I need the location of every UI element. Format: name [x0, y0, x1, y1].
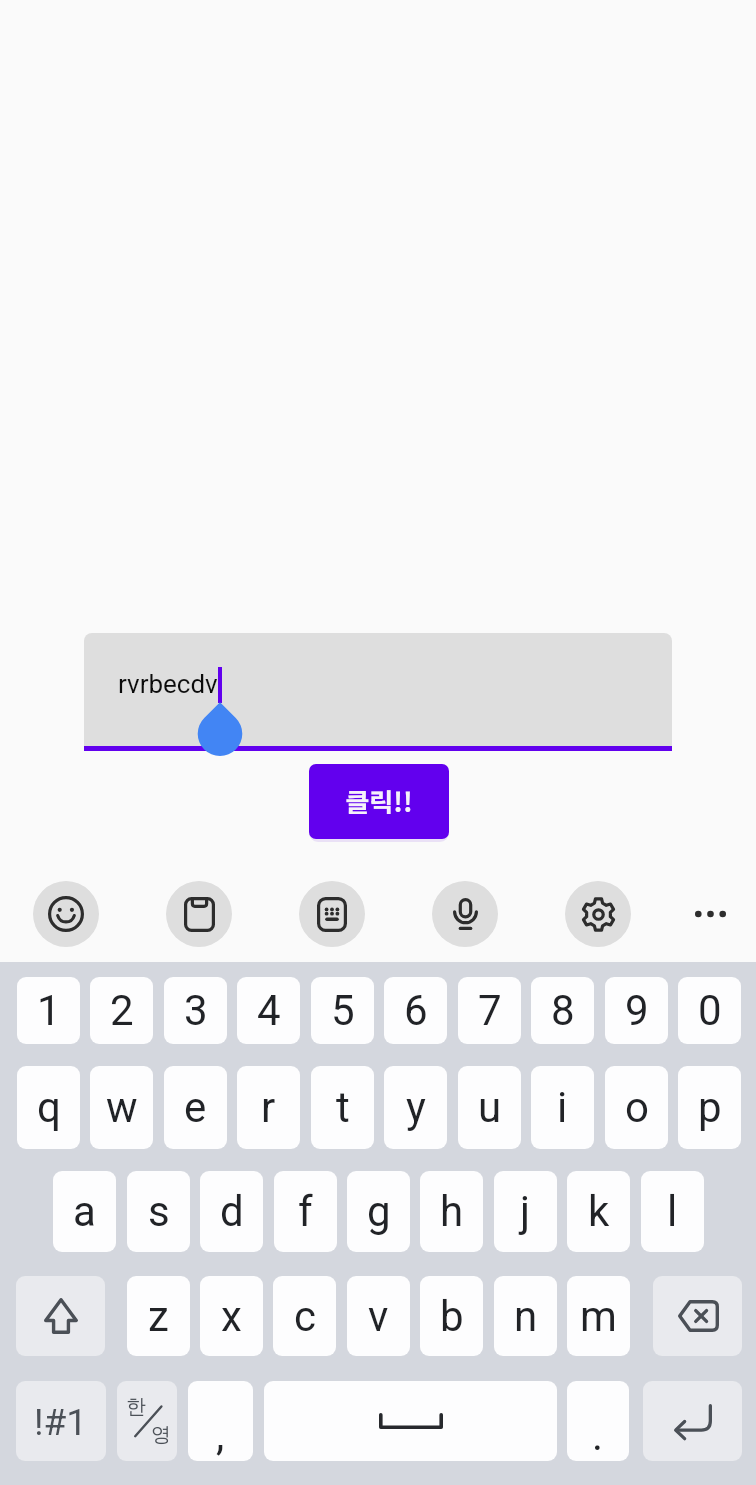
- staticText: z: [148, 1292, 169, 1341]
- staticText: a: [73, 1187, 96, 1236]
- button[interactable]: q: [17, 1066, 80, 1149]
- button[interactable]: a: [53, 1171, 116, 1252]
- staticText: h: [440, 1187, 464, 1236]
- staticText: w: [106, 1083, 138, 1132]
- staticText: 9: [625, 986, 649, 1035]
- button[interactable]: ,: [188, 1381, 253, 1461]
- staticText: q: [37, 1083, 61, 1132]
- button[interactable]: j: [494, 1171, 557, 1252]
- staticText: 2: [110, 986, 134, 1035]
- button[interactable]: 9: [605, 977, 668, 1044]
- button[interactable]: Shift: [16, 1276, 105, 1356]
- button[interactable]: [84, 633, 672, 746]
- button[interactable]: 클릭!!: [309, 764, 449, 839]
- button[interactable]: v: [347, 1276, 410, 1356]
- button[interactable]: l: [641, 1171, 704, 1252]
- staticText: b: [440, 1292, 464, 1341]
- button[interactable]: Settings: [565, 881, 631, 947]
- staticText: r: [261, 1083, 276, 1132]
- button[interactable]: 7: [458, 977, 521, 1044]
- staticText: 3: [184, 986, 208, 1035]
- button[interactable]: Emoji: [33, 881, 99, 947]
- staticText: 한: [126, 1394, 146, 1419]
- button[interactable]: g: [347, 1171, 410, 1252]
- staticText: 7: [478, 986, 502, 1035]
- button[interactable]: Space: [264, 1381, 557, 1461]
- button[interactable]: 5: [311, 977, 374, 1044]
- staticText: p: [698, 1083, 722, 1132]
- button[interactable]: 8: [531, 977, 594, 1044]
- staticText: k: [588, 1187, 610, 1236]
- staticText: l: [667, 1187, 678, 1236]
- staticText: t: [336, 1083, 350, 1132]
- staticText: u: [478, 1083, 502, 1132]
- button[interactable]: e: [164, 1066, 227, 1149]
- button[interactable]: 2: [90, 977, 153, 1044]
- button[interactable]: !#1: [16, 1381, 106, 1461]
- button[interactable]: c: [273, 1276, 336, 1356]
- button[interactable]: r: [237, 1066, 300, 1149]
- staticText: m: [580, 1292, 617, 1341]
- staticText: 5: [331, 986, 355, 1035]
- staticText: !#1: [34, 1401, 88, 1444]
- staticText: 1: [37, 986, 61, 1035]
- staticText: 클릭!!: [345, 782, 413, 820]
- button[interactable]: 6: [384, 977, 447, 1044]
- button[interactable]: b: [420, 1276, 483, 1356]
- staticText: o: [625, 1083, 649, 1132]
- button[interactable]: p: [678, 1066, 741, 1149]
- staticText: g: [367, 1187, 391, 1236]
- staticText: v: [368, 1292, 389, 1341]
- button[interactable]: d: [200, 1171, 263, 1252]
- staticText: 8: [551, 986, 575, 1035]
- button[interactable]: x: [200, 1276, 263, 1356]
- button[interactable]: i: [531, 1066, 594, 1149]
- button[interactable]: w: [90, 1066, 153, 1149]
- button[interactable]: o: [605, 1066, 668, 1149]
- staticText: 4: [257, 986, 281, 1035]
- button[interactable]: Keyboard layout: [299, 881, 365, 947]
- staticText: s: [148, 1187, 170, 1236]
- button[interactable]: f: [274, 1171, 337, 1252]
- button[interactable]: y: [384, 1066, 447, 1149]
- button[interactable]: 1: [17, 977, 80, 1044]
- staticText: i: [557, 1083, 568, 1132]
- button[interactable]: Clipboard: [166, 881, 232, 947]
- button[interactable]: Enter: [643, 1381, 742, 1461]
- button[interactable]: .: [567, 1381, 629, 1461]
- staticText: rvrbecdv: [118, 669, 218, 699]
- staticText: c: [294, 1292, 316, 1341]
- staticText: 영: [151, 1422, 171, 1447]
- staticText: n: [514, 1292, 538, 1341]
- staticText: x: [221, 1292, 242, 1341]
- staticText: ,: [216, 1411, 225, 1460]
- button[interactable]: t: [311, 1066, 374, 1149]
- button[interactable]: 3: [164, 977, 227, 1044]
- button[interactable]: s: [127, 1171, 190, 1252]
- button[interactable]: k: [567, 1171, 630, 1252]
- staticText: f: [298, 1187, 313, 1236]
- button[interactable]: Voice input: [432, 881, 498, 947]
- staticText: .: [592, 1411, 604, 1460]
- button[interactable]: 0: [678, 977, 741, 1044]
- button[interactable]: n: [494, 1276, 557, 1356]
- staticText: 6: [404, 986, 428, 1035]
- button[interactable]: Backspace: [653, 1276, 742, 1356]
- staticText: j: [520, 1187, 531, 1236]
- button[interactable]: 4: [237, 977, 300, 1044]
- button[interactable]: m: [567, 1276, 630, 1356]
- button[interactable]: More options: [677, 881, 743, 947]
- staticText: e: [184, 1083, 207, 1132]
- button[interactable]: Language: [117, 1381, 177, 1461]
- staticText: y: [406, 1083, 426, 1132]
- button[interactable]: h: [420, 1171, 483, 1252]
- button[interactable]: z: [127, 1276, 190, 1356]
- staticText: 0: [698, 986, 722, 1035]
- staticText: d: [220, 1187, 244, 1236]
- button[interactable]: u: [458, 1066, 521, 1149]
